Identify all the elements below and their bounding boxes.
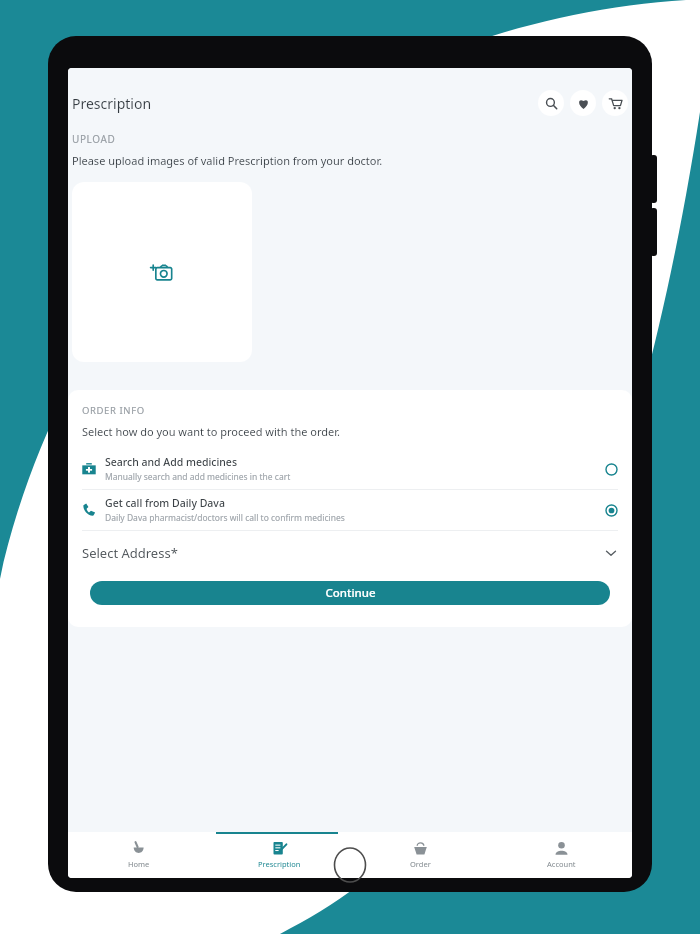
- button[interactable]: Account: [491, 832, 632, 878]
- button[interactable]: Home: [68, 832, 209, 878]
- staticText: Prescription: [72, 94, 152, 113]
- button[interactable]: Prescription: [209, 832, 350, 878]
- staticText: Please upload images of valid Prescripti…: [72, 153, 383, 168]
- button[interactable]: Search: [538, 90, 564, 116]
- staticText: Select how do you want to proceed with t…: [82, 424, 340, 439]
- staticText: Get call from Daily Dava: [105, 496, 225, 510]
- button[interactable]: Search and Add medicines: [82, 449, 618, 489]
- staticText: Home: [128, 859, 150, 869]
- staticText: Continue: [325, 585, 376, 601]
- button[interactable]: Get call from Daily Dava: [82, 490, 618, 530]
- staticText: Prescription: [258, 859, 301, 869]
- staticText: Select Address*: [82, 544, 178, 562]
- button[interactable]: Cart: [602, 90, 628, 116]
- button[interactable]: Continue: [90, 581, 610, 605]
- staticText: UPLOAD: [72, 132, 116, 146]
- staticText: Daily Dava pharmacist/doctors will call …: [105, 512, 345, 524]
- staticText: Account: [547, 859, 576, 869]
- button[interactable]: Order: [350, 832, 491, 878]
- button[interactable]: Favorites: [570, 90, 596, 116]
- staticText: Search and Add medicines: [105, 455, 237, 469]
- staticText: Order: [410, 859, 431, 869]
- button[interactable]: [72, 182, 252, 362]
- staticText: ORDER INFO: [82, 404, 145, 417]
- staticText: Manually search and add medicines in the…: [105, 471, 291, 483]
- button[interactable]: Select Address*: [82, 531, 618, 575]
